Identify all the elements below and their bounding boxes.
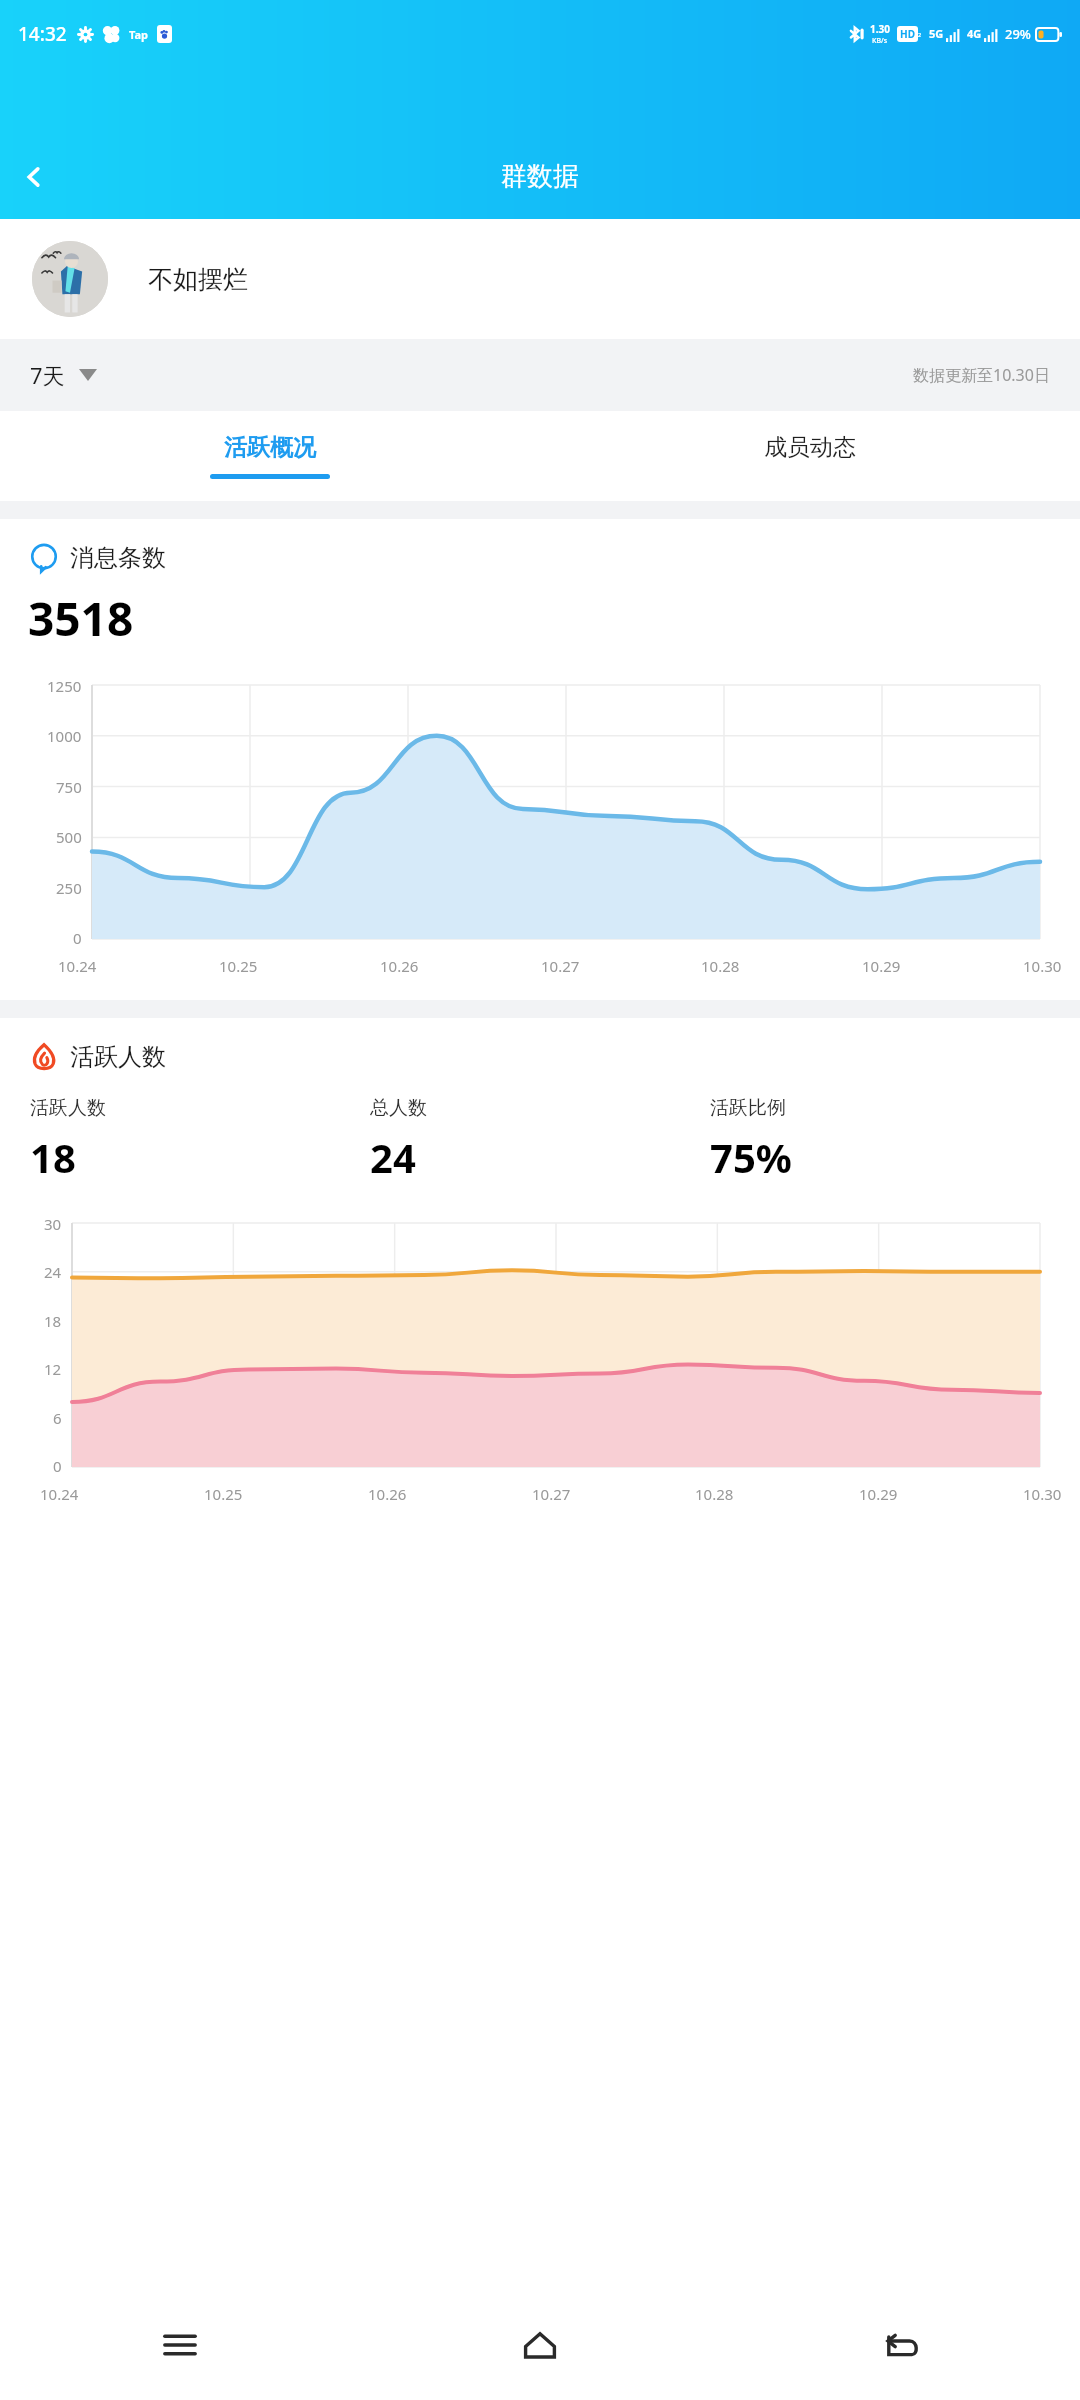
staticText: 18 [44, 1311, 62, 1331]
staticText: 10.27 [532, 1484, 571, 1504]
staticText: 10.28 [695, 1484, 734, 1504]
staticText: 750 [56, 777, 82, 797]
button[interactable]: 成员动态 [540, 411, 1080, 501]
staticText: 总人数 [370, 1096, 427, 1120]
staticText: 5G [929, 26, 944, 41]
staticText: 10.24 [58, 956, 97, 976]
staticText: 10.29 [859, 1484, 898, 1504]
staticText: 活跃比例 [710, 1096, 786, 1120]
staticText: 24 [370, 1130, 416, 1184]
staticText: 6 [53, 1408, 62, 1428]
staticText: Tap [129, 27, 149, 42]
button[interactable]: 活跃概况 [0, 411, 540, 501]
staticText: 500 [56, 827, 82, 847]
staticText: 10.30 [1023, 956, 1062, 976]
staticText: 10.26 [368, 1484, 407, 1504]
staticText: 14:32 [18, 21, 67, 47]
button[interactable]: Back [6, 149, 62, 205]
staticText: 1.30 [870, 22, 890, 36]
staticText: 250 [56, 878, 82, 898]
staticText: 4G [967, 26, 982, 41]
button[interactable]: Home [360, 2290, 720, 2400]
staticText: 3518 [28, 587, 134, 650]
staticText: 0 [73, 928, 82, 948]
staticText: 24 [44, 1262, 62, 1282]
staticText: 10.26 [380, 956, 419, 976]
button[interactable]: 不如摆烂 [0, 219, 1080, 339]
staticText: 活跃概况 [224, 433, 316, 462]
staticText: 10.24 [40, 1484, 79, 1504]
staticText: 10.28 [701, 956, 740, 976]
staticText: KB/s [872, 36, 888, 46]
staticText: 0 [53, 1456, 62, 1476]
staticText: 10.25 [204, 1484, 243, 1504]
staticText: 7天 [30, 360, 65, 390]
staticText: 活跃人数 [30, 1096, 106, 1120]
staticText: 1250 [47, 676, 82, 696]
staticText: HD [900, 27, 915, 41]
staticText: 12 [44, 1359, 62, 1379]
staticText: ₂ [918, 26, 922, 38]
button[interactable]: Recent apps [0, 2290, 360, 2400]
staticText: 30 [44, 1214, 62, 1234]
staticText: 数据更新至10.30日 [913, 364, 1050, 386]
staticText: 群数据 [501, 160, 579, 193]
staticText: 1000 [47, 726, 82, 746]
staticText: 10.25 [219, 956, 258, 976]
staticText: 活跃人数 [70, 1042, 166, 1072]
staticText: 18 [30, 1130, 76, 1184]
button[interactable]: Back [720, 2290, 1080, 2400]
staticText: 不如摆烂 [148, 264, 248, 295]
button[interactable]: 7天 [30, 360, 97, 390]
staticText: 10.29 [862, 956, 901, 976]
staticText: 消息条数 [70, 543, 166, 573]
staticText: 成员动态 [764, 433, 856, 462]
staticText: 10.30 [1023, 1484, 1062, 1504]
staticText: 29% [1005, 25, 1031, 43]
staticText: 75% [710, 1130, 792, 1184]
staticText: 10.27 [541, 956, 580, 976]
